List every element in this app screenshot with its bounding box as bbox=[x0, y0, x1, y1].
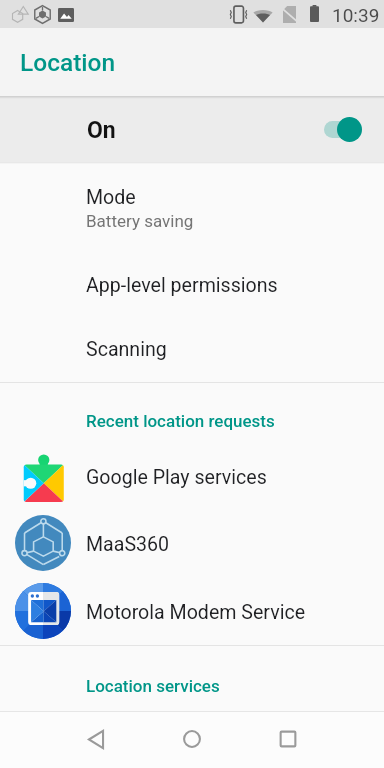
button[interactable]: Scanning bbox=[0, 322, 384, 380]
button[interactable]: On bbox=[0, 99, 384, 162]
staticText: On bbox=[87, 117, 116, 144]
button[interactable]: Google Play services bbox=[0, 443, 384, 509]
button[interactable]: App-level permissions bbox=[0, 258, 384, 316]
button[interactable]: Home bbox=[168, 715, 216, 763]
staticText: 10:39 bbox=[332, 4, 380, 26]
button[interactable]: Mode bbox=[0, 170, 384, 234]
staticText: Location services bbox=[86, 676, 220, 696]
button[interactable]: Motorola Modem Service bbox=[0, 578, 384, 644]
staticText: App-level permissions bbox=[86, 274, 278, 297]
button[interactable]: Back bbox=[72, 715, 120, 763]
staticText: MaaS360 bbox=[86, 533, 170, 556]
staticText: Google Play services bbox=[86, 466, 267, 489]
button[interactable]: Recents bbox=[264, 715, 312, 763]
staticText: Battery saving bbox=[86, 211, 194, 231]
button[interactable]: MaaS360 bbox=[0, 510, 384, 576]
staticText: Location bbox=[20, 48, 116, 77]
staticText: Scanning bbox=[86, 338, 167, 361]
staticText: Motorola Modem Service bbox=[86, 601, 306, 624]
staticText: Mode bbox=[86, 186, 136, 209]
staticText: Recent location requests bbox=[86, 411, 275, 431]
